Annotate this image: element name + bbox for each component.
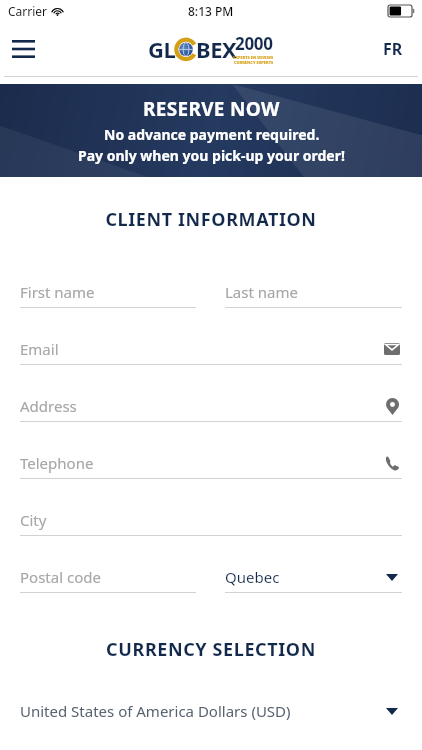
staticText: FR <box>383 38 403 60</box>
staticText: 2000 <box>235 32 273 55</box>
button[interactable]: Quebec <box>225 566 402 593</box>
button[interactable]: Address <box>20 395 402 422</box>
staticText: Last name <box>225 282 402 302</box>
staticText: GL <box>148 34 176 64</box>
staticText: No advance payment required. <box>104 125 320 144</box>
button[interactable]: Open navigation menu <box>6 32 40 66</box>
button[interactable]: Email <box>20 338 402 365</box>
other: Open dropdown <box>382 701 402 721</box>
staticText: Email <box>20 339 382 359</box>
staticText: BEX <box>196 34 237 64</box>
other: Email <box>382 339 402 359</box>
other: Telephone <box>382 453 402 473</box>
button[interactable]: City <box>20 509 402 536</box>
staticText: Postal code <box>20 567 196 587</box>
staticText: EXPERTS EN DEVISES <box>233 55 274 60</box>
staticText: City <box>20 510 402 530</box>
button[interactable]: FR <box>374 32 412 66</box>
button[interactable]: First name <box>20 281 196 308</box>
button[interactable]: Last name <box>225 281 402 308</box>
staticText: Address <box>20 396 382 416</box>
staticText: Carrier <box>8 3 48 19</box>
staticText: 8:13 PM <box>188 3 234 19</box>
button[interactable]: United States of America Dollars (USD) <box>20 701 402 721</box>
staticText: First name <box>20 282 196 302</box>
staticText: Telephone <box>20 453 382 473</box>
staticText: CURRENCY SELECTION <box>0 637 422 662</box>
other: Open dropdown <box>382 567 402 587</box>
staticText: RESERVE NOW <box>143 96 280 122</box>
button[interactable]: Telephone <box>20 452 402 479</box>
staticText: CLIENT INFORMATION <box>0 207 422 232</box>
staticText: United States of America Dollars (USD) <box>20 701 382 721</box>
staticText: Pay only when you pick-up your order! <box>78 146 345 165</box>
other: Address location <box>382 396 402 416</box>
button[interactable]: Postal code <box>20 566 196 593</box>
staticText: Quebec <box>225 567 382 587</box>
staticText: CURRENCY EXPERTS <box>234 60 274 65</box>
